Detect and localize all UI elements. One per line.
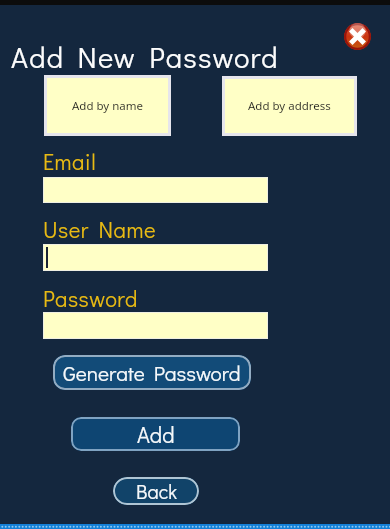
staticText: Add [137,420,175,449]
staticText: User Name [43,215,156,244]
button[interactable]: Add by address [225,79,354,133]
staticText: Add by address [248,98,331,114]
button[interactable]: Add [71,417,240,451]
button[interactable] [344,23,371,50]
button[interactable] [43,177,268,203]
staticText: Back [136,478,177,504]
button[interactable]: Add by name [47,78,168,133]
button[interactable]: Back [113,477,199,505]
button[interactable]: Generate Password [53,355,251,390]
button[interactable] [43,312,268,339]
staticText: Email [43,147,97,176]
staticText: Add by name [72,98,143,114]
button[interactable] [43,244,268,271]
staticText: Password [43,284,138,313]
staticText: Add New Password [11,38,279,76]
staticText: Generate Password [63,359,241,387]
